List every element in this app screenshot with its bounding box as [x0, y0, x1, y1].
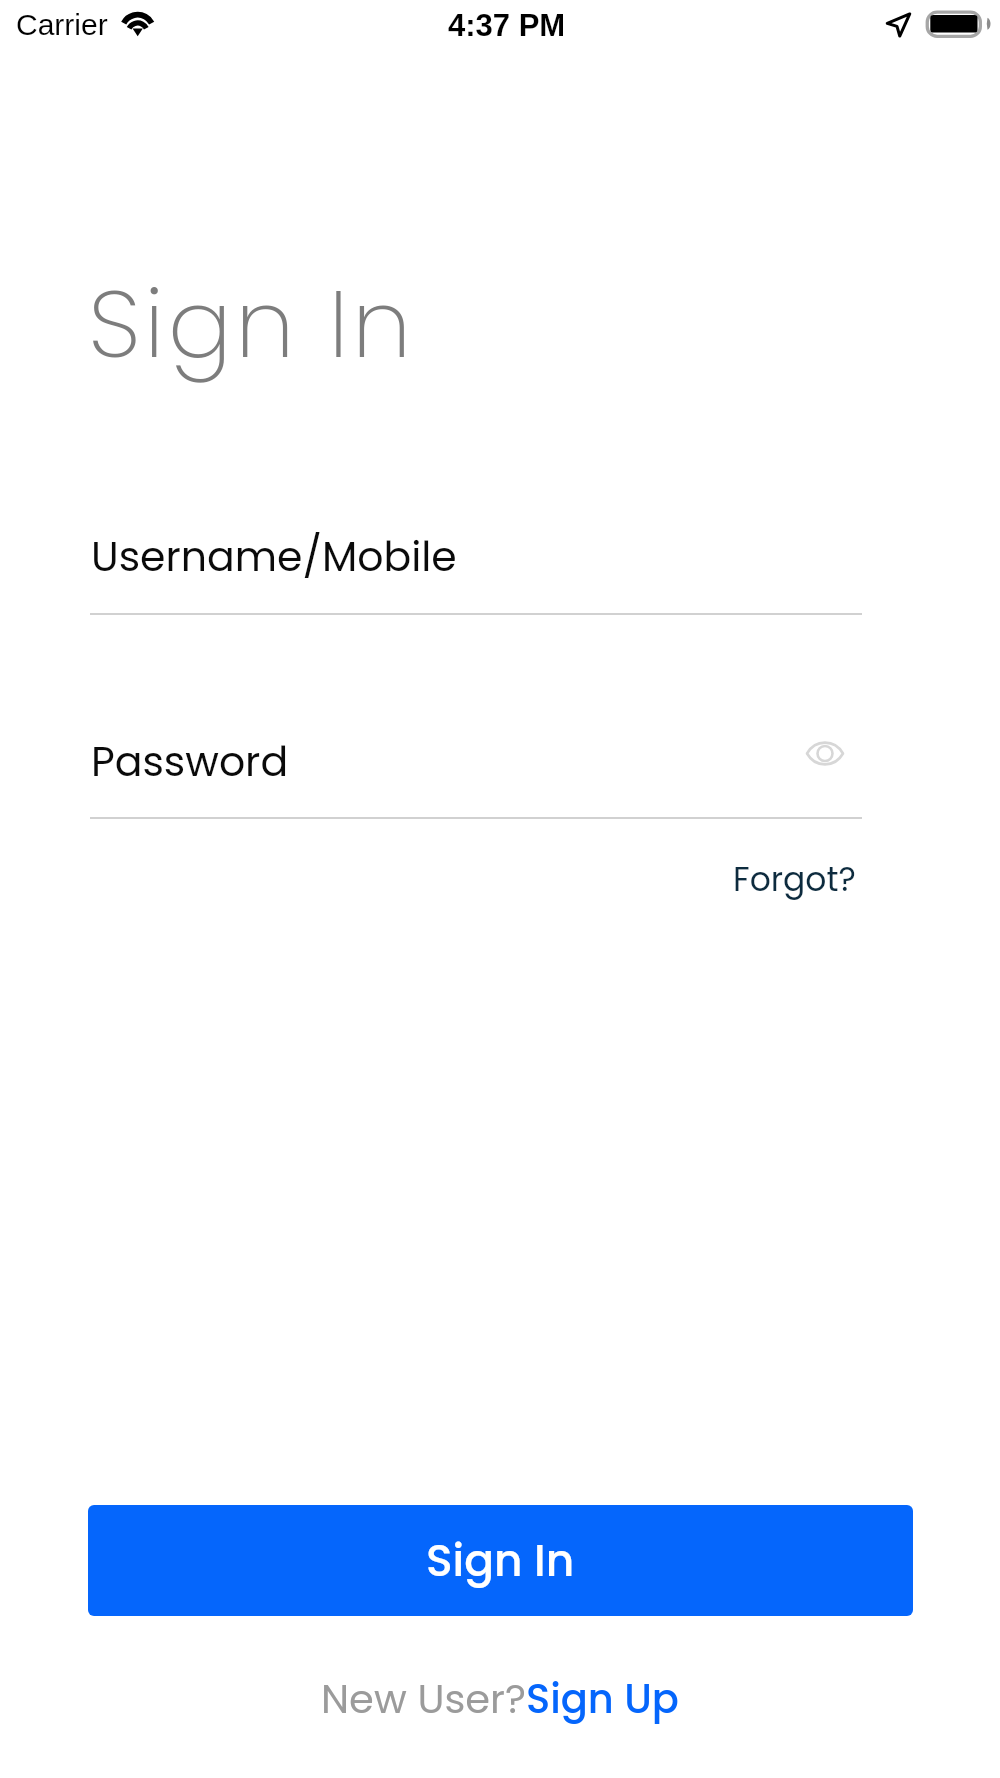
staticText: 4:37 PM — [448, 8, 566, 43]
staticText: Sign In — [426, 1530, 575, 1592]
button[interactable]: Show password — [789, 717, 861, 789]
button[interactable]: Forgot? — [713, 853, 856, 905]
staticText: Carrier — [16, 8, 108, 42]
staticText: Sign In — [88, 257, 415, 390]
button[interactable]: Username/Mobile — [90, 520, 862, 615]
staticText: Username/Mobile — [91, 528, 457, 585]
button[interactable]: Sign Up — [526, 1671, 679, 1727]
staticText: New User? — [321, 1671, 526, 1727]
staticText: Password — [91, 733, 289, 790]
button[interactable]: Sign In — [88, 1505, 913, 1616]
button[interactable]: Password — [90, 725, 862, 821]
staticText: Forgot? — [733, 856, 856, 902]
